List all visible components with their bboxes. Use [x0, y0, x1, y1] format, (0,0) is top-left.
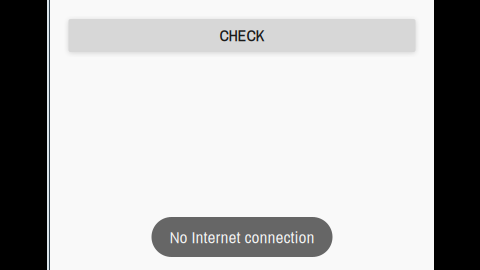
staticText: No Internet connection — [169, 225, 314, 249]
staticText: CHECK — [219, 25, 264, 46]
button[interactable]: CHECK — [68, 19, 415, 52]
